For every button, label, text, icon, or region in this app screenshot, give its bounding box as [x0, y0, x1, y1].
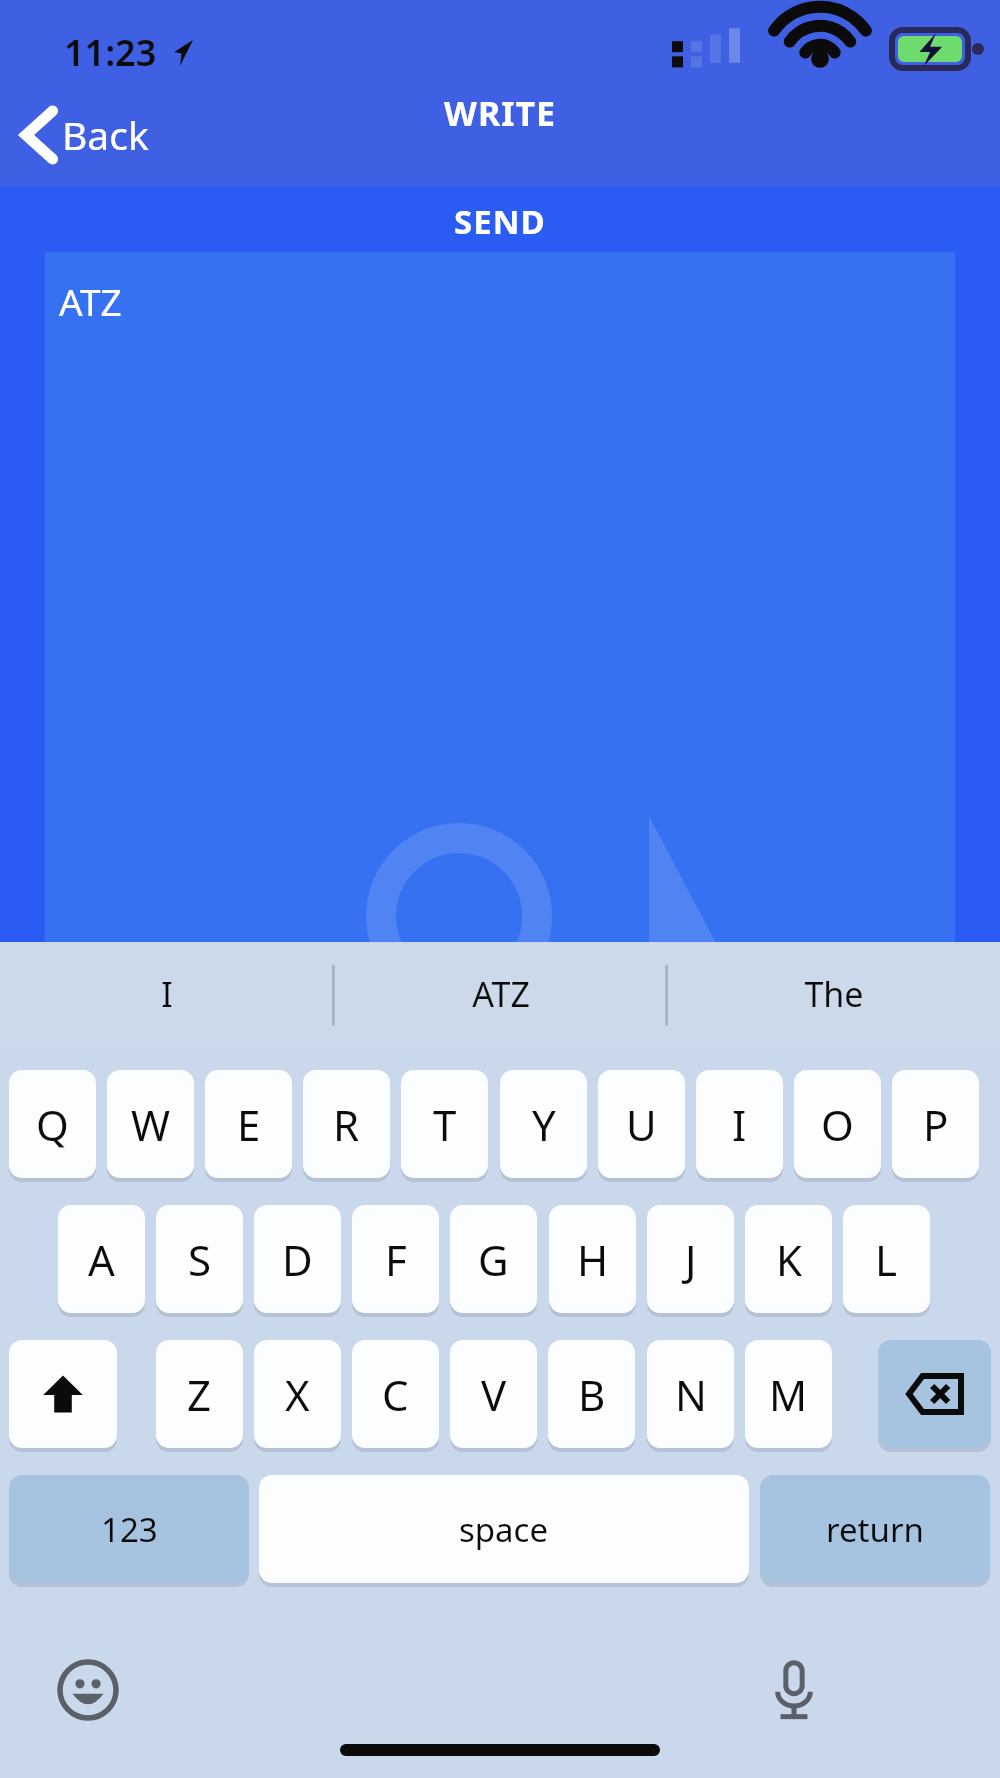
button[interactable]: space	[259, 1475, 749, 1583]
button[interactable]: Backspace	[878, 1340, 991, 1448]
button[interactable]: H	[549, 1205, 636, 1313]
button[interactable]: W	[107, 1070, 194, 1178]
staticText: J	[685, 1231, 697, 1288]
staticText: M	[769, 1366, 808, 1423]
button[interactable]: M	[745, 1340, 832, 1448]
button[interactable]: I	[0, 942, 334, 1046]
button[interactable]: E	[205, 1070, 292, 1178]
staticText: Z	[187, 1366, 212, 1423]
button[interactable]: K	[745, 1205, 832, 1313]
button[interactable]: F	[352, 1205, 439, 1313]
button[interactable]: N	[647, 1340, 734, 1448]
button[interactable]: D	[254, 1205, 341, 1313]
staticText: Y	[532, 1096, 556, 1153]
button[interactable]: R	[303, 1070, 390, 1178]
staticText: 11:23	[64, 28, 157, 77]
button[interactable]: 123	[9, 1475, 249, 1583]
button[interactable]: B	[548, 1340, 635, 1448]
staticText: Back	[62, 108, 149, 161]
button[interactable]: Q	[9, 1070, 96, 1178]
staticText: V	[481, 1366, 507, 1423]
staticText: U	[626, 1096, 657, 1153]
staticText: F	[385, 1231, 407, 1288]
button[interactable]: I	[696, 1070, 783, 1178]
button[interactable]: T	[401, 1070, 488, 1178]
staticText: L	[875, 1231, 898, 1288]
button[interactable]: V	[450, 1340, 537, 1448]
staticText: H	[577, 1231, 609, 1288]
staticText: space	[459, 1507, 549, 1552]
staticText: 123	[101, 1507, 158, 1552]
button[interactable]: Y	[500, 1070, 587, 1178]
staticText: E	[237, 1096, 261, 1153]
button[interactable]: SEND	[0, 188, 1000, 254]
button[interactable]: A	[58, 1205, 145, 1313]
button[interactable]: U	[598, 1070, 685, 1178]
staticText: O	[821, 1096, 854, 1153]
button[interactable]: S	[156, 1205, 243, 1313]
button[interactable]: Voice input	[762, 1658, 826, 1722]
staticText: G	[478, 1231, 509, 1288]
button[interactable]: J	[647, 1205, 734, 1313]
staticText: I	[732, 1096, 747, 1153]
staticText: B	[578, 1366, 606, 1423]
button[interactable]: ATZ	[334, 942, 667, 1046]
staticText: return	[826, 1507, 924, 1552]
staticText: I	[161, 971, 173, 1017]
button[interactable]: The	[667, 942, 1000, 1046]
button[interactable]: X	[254, 1340, 341, 1448]
staticText: S	[188, 1231, 212, 1288]
button[interactable]: return	[760, 1475, 990, 1583]
staticText: WRITE	[444, 90, 557, 136]
staticText: T	[433, 1096, 457, 1153]
staticText: D	[282, 1231, 313, 1288]
button[interactable]: L	[843, 1205, 930, 1313]
button[interactable]: G	[450, 1205, 537, 1313]
staticText: N	[675, 1366, 707, 1423]
staticText: ATZ	[472, 971, 530, 1017]
button[interactable]: Shift	[9, 1340, 117, 1448]
staticText: Q	[36, 1096, 69, 1153]
staticText: ATZ	[59, 276, 122, 326]
button[interactable]: Back	[24, 108, 149, 161]
button[interactable]: Emoji keyboard	[56, 1658, 120, 1722]
staticText: R	[333, 1096, 360, 1153]
button[interactable]: O	[794, 1070, 881, 1178]
staticText: W	[131, 1096, 171, 1153]
staticText: P	[923, 1096, 949, 1153]
staticText: A	[88, 1231, 115, 1288]
staticText: The	[804, 971, 864, 1017]
staticText: X	[285, 1366, 310, 1423]
staticText: C	[382, 1366, 409, 1423]
staticText: K	[776, 1231, 802, 1288]
staticText: SEND	[454, 199, 546, 244]
button[interactable]: C	[352, 1340, 439, 1448]
button[interactable]: Z	[156, 1340, 243, 1448]
button[interactable]: ATZ	[45, 252, 955, 942]
button[interactable]: P	[892, 1070, 979, 1178]
